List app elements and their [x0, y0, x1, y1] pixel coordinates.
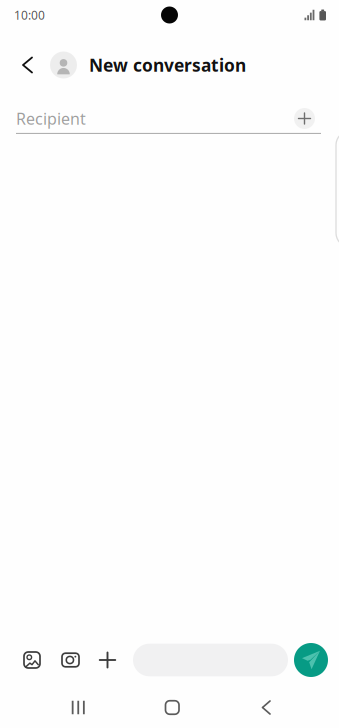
- button[interactable]: Home: [125, 687, 219, 728]
- button[interactable]: Add recipient: [294, 108, 315, 129]
- button[interactable]: Gallery: [14, 633, 50, 687]
- staticText: Recipient: [16, 108, 86, 129]
- staticText: New conversation: [89, 53, 246, 76]
- button[interactable]: Recent apps: [31, 687, 125, 728]
- button[interactable]: Camera: [50, 633, 91, 687]
- button[interactable]: Send: [294, 633, 328, 687]
- button[interactable]: Attach: [91, 633, 124, 687]
- button[interactable]: [133, 633, 288, 687]
- button[interactable]: Back: [219, 687, 313, 728]
- button[interactable]: Back: [0, 45, 50, 84]
- staticText: 10:00: [14, 7, 45, 23]
